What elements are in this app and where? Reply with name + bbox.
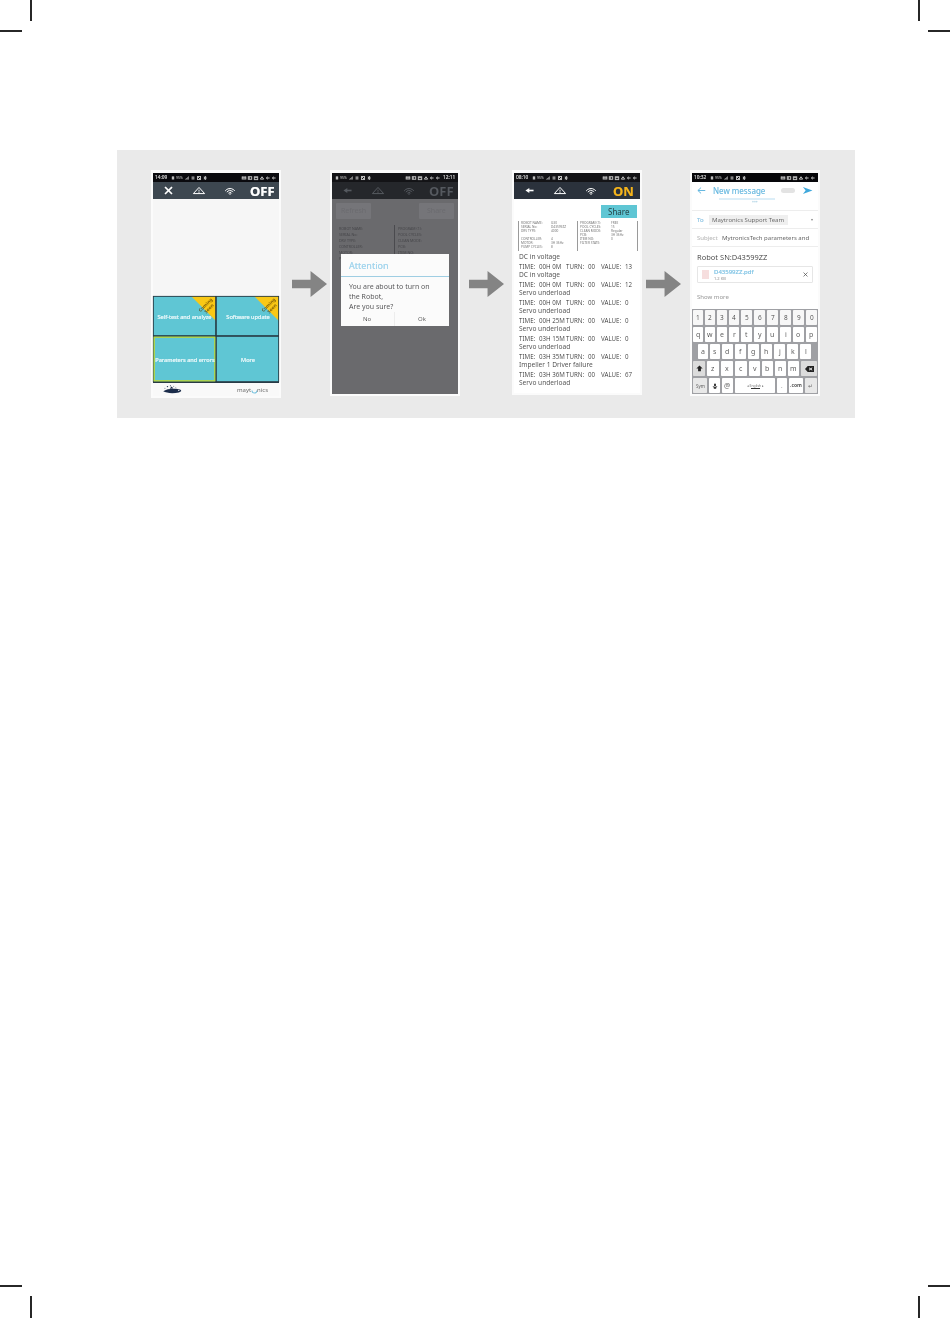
button[interactable]: 7: [767, 310, 778, 325]
button[interactable]: .: [777, 378, 787, 393]
button[interactable]: 8: [780, 310, 791, 325]
button[interactable]: 1: [693, 310, 703, 325]
button[interactable]: e: [717, 327, 727, 342]
button[interactable]: Sym: [693, 378, 707, 393]
button[interactable]: c: [735, 361, 747, 376]
button[interactable]: Next step: [292, 271, 327, 297]
button[interactable]: q: [693, 327, 703, 342]
button[interactable]: Share: [601, 205, 637, 218]
staticText: t: [745, 330, 748, 340]
button[interactable]: Wi-Fi: [575, 182, 606, 199]
staticText: ITEM NO:: [580, 237, 611, 241]
staticText: 12:11: [443, 174, 456, 181]
button[interactable]: s: [710, 344, 720, 359]
button[interactable]: y: [754, 327, 765, 342]
button[interactable]: v: [749, 361, 760, 376]
button[interactable]: Alerts: [362, 182, 393, 199]
button[interactable]: x: [721, 361, 733, 376]
button[interactable]: Back: [697, 186, 706, 195]
button[interactable]: m: [788, 361, 799, 376]
button[interactable]: Wi-Fi: [214, 182, 245, 199]
staticText: 67: [625, 370, 633, 378]
staticText: TURN:: [566, 298, 585, 306]
button[interactable]: a: [698, 344, 708, 359]
staticText: DRV TYPE:: [521, 229, 551, 233]
staticText: PUMP CYCLES:: [339, 256, 364, 261]
button[interactable]: Ok: [395, 312, 449, 326]
button[interactable]: 0: [806, 310, 817, 325]
button[interactable]: Back: [332, 182, 362, 199]
staticText: TIME:: [519, 298, 536, 306]
staticText: TURN:: [566, 352, 585, 360]
button[interactable]: ◂ English ▸: [735, 378, 775, 393]
button[interactable]: Coming Soon: [216, 296, 279, 336]
staticText: 0: [625, 352, 629, 360]
button[interactable]: z: [707, 361, 719, 376]
staticText: 1: [696, 313, 700, 322]
button[interactable]: r: [729, 327, 739, 342]
button[interactable]: Attach: [781, 188, 795, 193]
button[interactable]: Show more: [697, 293, 729, 301]
button[interactable]: u: [767, 327, 778, 342]
button[interactable]: .com: [789, 378, 803, 393]
staticText: x: [725, 364, 729, 374]
button[interactable]: k: [787, 344, 798, 359]
staticText: j: [779, 347, 781, 357]
button[interactable]: w: [705, 327, 715, 342]
button[interactable]: Remove attachment: [803, 272, 808, 277]
button[interactable]: 9: [793, 310, 804, 325]
button[interactable]: Wi-Fi: [393, 182, 424, 199]
button[interactable]: b: [762, 361, 773, 376]
button[interactable]: Coming Soon: [153, 296, 216, 336]
button[interactable]: 6: [754, 310, 765, 325]
button[interactable]: ON: [606, 182, 640, 199]
button[interactable]: Close: [153, 182, 183, 199]
staticText: 0: [625, 316, 629, 324]
button[interactable]: t: [741, 327, 752, 342]
button[interactable]: 2: [705, 310, 715, 325]
staticText: PUMP CYCLES:: [521, 245, 551, 249]
button[interactable]: j: [774, 344, 785, 359]
button[interactable]: h: [761, 344, 772, 359]
button[interactable]: Enter: [805, 378, 817, 393]
button[interactable]: @: [722, 378, 733, 393]
button[interactable]: 4: [729, 310, 739, 325]
button[interactable]: Next step: [646, 271, 681, 297]
button[interactable]: Alerts: [544, 182, 575, 199]
button[interactable]: l: [800, 344, 811, 359]
staticText: 0: [625, 334, 629, 342]
button[interactable]: Next step: [469, 271, 504, 297]
button[interactable]: Maytronics Support Team: [712, 216, 785, 224]
staticText: •••: [752, 199, 758, 206]
button[interactable]: No: [341, 312, 394, 326]
staticText: mayt: [237, 386, 252, 394]
button[interactable]: D43599ZZ.pdf: [697, 266, 813, 283]
button[interactable]: o: [793, 327, 804, 342]
button[interactable]: Alerts: [183, 182, 214, 199]
button[interactable]: Backspace: [801, 361, 817, 376]
button[interactable]: f: [735, 344, 746, 359]
staticText: 0: [810, 313, 814, 322]
button[interactable]: Back: [514, 182, 544, 199]
button[interactable]: 3: [717, 310, 727, 325]
staticText: 00H 0M: [539, 262, 562, 270]
button[interactable]: n: [775, 361, 786, 376]
button[interactable]: Parameters and errors: [153, 336, 216, 382]
staticText: .: [781, 382, 783, 390]
button[interactable]: OFF: [245, 182, 279, 199]
staticText: 00: [588, 370, 596, 378]
button[interactable]: More: [216, 336, 279, 382]
button[interactable]: p: [806, 327, 817, 342]
button[interactable]: Send: [802, 185, 813, 196]
staticText: PCB:: [580, 233, 611, 237]
button[interactable]: 5: [741, 310, 752, 325]
button[interactable]: i: [780, 327, 791, 342]
button[interactable]: d: [722, 344, 733, 359]
button[interactable]: Voice input: [709, 378, 720, 393]
button[interactable]: Shift: [693, 361, 705, 376]
button[interactable]: OFF: [424, 182, 458, 199]
button[interactable]: g: [748, 344, 759, 359]
staticText: e: [720, 330, 724, 340]
